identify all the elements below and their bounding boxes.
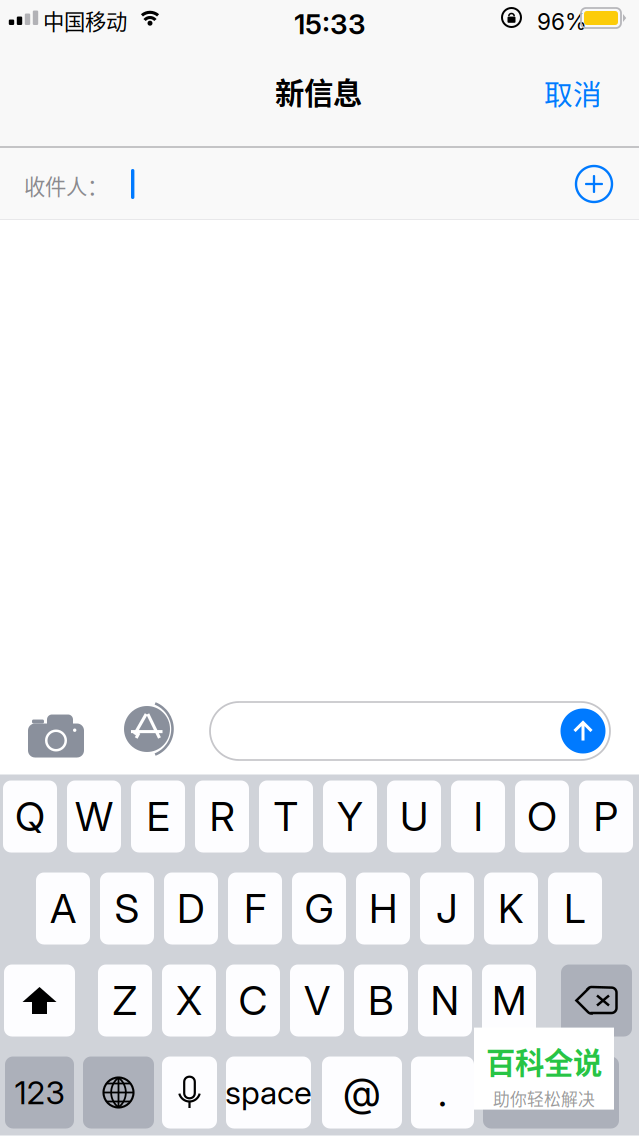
staticText: I — [473, 792, 482, 841]
button[interactable]: 取消 — [525, 56, 621, 129]
staticText: T — [273, 792, 298, 841]
staticText: L — [564, 884, 586, 933]
staticText: 百科全说 — [486, 1040, 602, 1082]
staticText: Z — [112, 976, 137, 1025]
button[interactable]: E — [131, 780, 185, 852]
button[interactable]: M — [482, 964, 536, 1036]
staticText: 新信息 — [275, 70, 362, 112]
staticText: U — [400, 792, 428, 841]
staticText: 助你轻松解决 — [493, 1086, 595, 1110]
button[interactable]: Camera — [22, 704, 90, 759]
button[interactable]: Next keyboard — [83, 1056, 154, 1128]
button[interactable]: K — [484, 872, 538, 944]
staticText: 收件人： — [24, 170, 108, 201]
staticText: N — [430, 976, 459, 1025]
button[interactable]: Apps — [115, 702, 183, 757]
button[interactable]: Add contact — [568, 158, 620, 210]
staticText: 123 — [14, 1073, 64, 1112]
button[interactable]: Dictation — [162, 1056, 217, 1128]
button[interactable]: D — [164, 872, 218, 944]
button[interactable]: Shift — [4, 964, 75, 1036]
button[interactable]: H — [356, 872, 410, 944]
button[interactable]: S — [100, 872, 154, 944]
staticText: @ — [343, 1069, 381, 1116]
button[interactable]: P — [579, 780, 633, 852]
staticText: F — [244, 884, 266, 933]
staticText: 取消 — [544, 72, 602, 113]
staticText: Y — [337, 792, 363, 841]
button[interactable]: V — [290, 964, 344, 1036]
button[interactable]: U — [387, 780, 441, 852]
staticText: C — [238, 976, 267, 1025]
staticText: M — [492, 976, 526, 1025]
staticText: V — [304, 976, 330, 1025]
staticText: 中国移动 — [43, 5, 127, 36]
button[interactable]: Delete — [561, 964, 632, 1036]
staticText: 96% — [537, 8, 587, 35]
button[interactable]: @ — [322, 1056, 402, 1128]
staticText: H — [369, 884, 397, 933]
button[interactable]: C — [226, 964, 280, 1036]
button[interactable]: F — [228, 872, 282, 944]
button[interactable]: Z — [98, 964, 152, 1036]
button[interactable]: B — [354, 964, 408, 1036]
button[interactable]: . — [411, 1056, 474, 1128]
staticText: S — [114, 884, 139, 933]
button[interactable]: X — [162, 964, 216, 1036]
button[interactable]: space — [226, 1056, 311, 1128]
staticText: R — [209, 792, 234, 841]
button[interactable]: A — [36, 872, 90, 944]
staticText: D — [177, 884, 205, 933]
staticText: space — [225, 1073, 312, 1112]
button[interactable]: O — [515, 780, 569, 852]
staticText: G — [304, 884, 333, 933]
staticText: A — [50, 884, 76, 933]
button[interactable]: T — [259, 780, 313, 852]
staticText: Q — [15, 792, 45, 841]
staticText: 15:33 — [294, 7, 366, 41]
button[interactable]: R — [195, 780, 249, 852]
staticText: B — [368, 976, 394, 1025]
button[interactable] — [483, 1056, 619, 1128]
staticText: P — [593, 792, 618, 841]
staticText: X — [176, 976, 202, 1025]
staticText: O — [527, 792, 557, 841]
button[interactable]: N — [418, 964, 472, 1036]
staticText: W — [75, 792, 113, 841]
button[interactable]: J — [420, 872, 474, 944]
button[interactable]: Send — [557, 705, 609, 757]
staticText: K — [498, 884, 524, 933]
button[interactable]: I — [451, 780, 505, 852]
button[interactable]: Q — [3, 780, 57, 852]
staticText: . — [438, 1069, 447, 1116]
button[interactable]: Y — [323, 780, 377, 852]
button[interactable]: G — [292, 872, 346, 944]
button[interactable]: W — [67, 780, 121, 852]
button[interactable]: L — [548, 872, 602, 944]
button[interactable]: 123 — [5, 1056, 74, 1128]
staticText: E — [146, 792, 169, 841]
staticText: J — [436, 884, 458, 933]
